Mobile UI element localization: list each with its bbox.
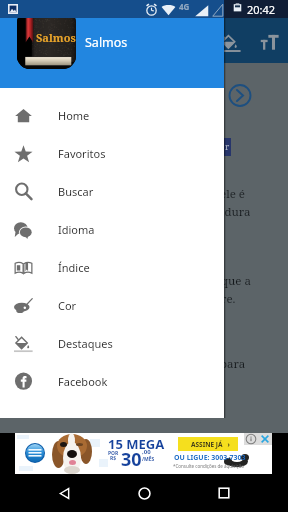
button[interactable]: Facebook (0, 362, 224, 400)
button[interactable]: Text size (253, 26, 285, 58)
button[interactable]: Destaques (0, 324, 224, 362)
staticText: para (220, 356, 246, 372)
staticText: /MÊS (142, 456, 155, 463)
staticText: Home (58, 108, 90, 123)
button[interactable]: Cor (0, 286, 224, 324)
staticText: R$ (110, 455, 117, 462)
staticText: re. (221, 291, 236, 307)
staticText: ,00 (142, 448, 151, 456)
button[interactable]: Índice (0, 248, 224, 286)
staticText: que a (221, 273, 251, 289)
button[interactable]: Home (128, 477, 160, 509)
staticText: POR (108, 450, 119, 457)
staticText: Salmos (36, 30, 76, 45)
staticText: Cor (58, 298, 77, 313)
button[interactable]: Home (0, 96, 224, 134)
staticText: Destaques (58, 336, 113, 351)
staticText: 15 MEGA (108, 435, 165, 453)
staticText: *Consulte condições de aquisição (173, 463, 245, 469)
staticText: Salmos (85, 34, 128, 51)
button[interactable]: Back (48, 477, 80, 509)
staticText: 30 (121, 447, 142, 472)
button[interactable]: Destaques (214, 26, 246, 58)
staticText: Favoritos (58, 146, 106, 161)
button[interactable]: Idioma (0, 210, 224, 248)
staticText: ASSINE JÁ › (191, 440, 230, 449)
staticText: Idioma (58, 222, 95, 237)
staticText: Índice (58, 260, 90, 275)
staticText: ele é (220, 186, 246, 202)
button[interactable]: Favoritos (0, 134, 224, 172)
staticText: 4G (179, 1, 190, 12)
staticText: ndura (217, 204, 251, 220)
staticText: Buscar (58, 184, 94, 199)
staticText: r (225, 140, 230, 152)
staticText: OU LIGUE: 3003-7303 (174, 453, 246, 463)
staticText: 20:42 (247, 2, 276, 17)
button[interactable]: Recents (208, 477, 240, 509)
button[interactable]: 15 MEGA (15, 433, 272, 474)
button[interactable]: Buscar (0, 172, 224, 210)
staticText: Facebook (58, 374, 108, 389)
